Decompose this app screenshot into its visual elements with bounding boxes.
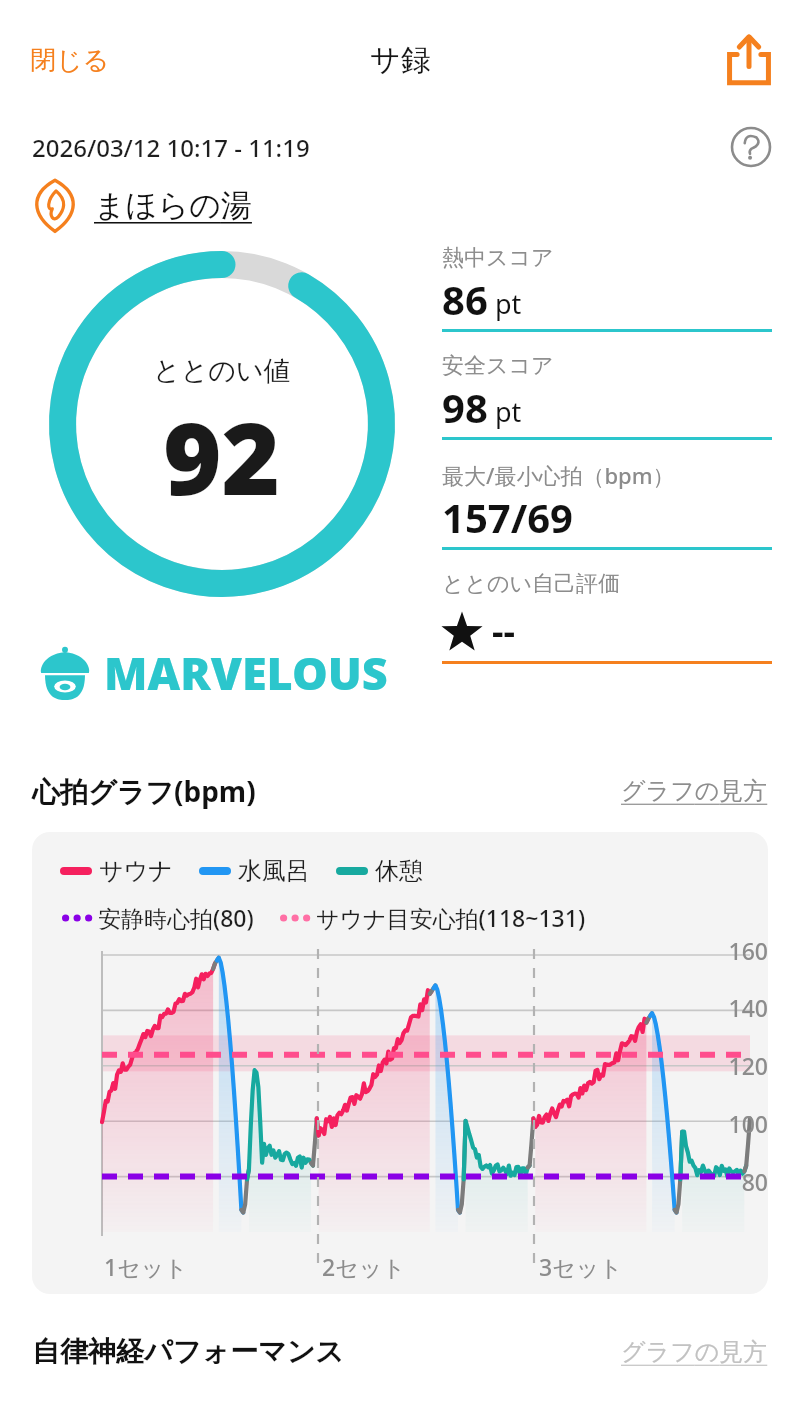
button[interactable]: 閉じる — [16, 34, 124, 87]
staticText: 100 — [728, 1108, 768, 1139]
staticText: 80 — [741, 1166, 768, 1197]
staticText: 自律神経パフォーマンス — [32, 1334, 344, 1369]
staticText: 安全スコア — [442, 352, 554, 380]
button[interactable]: Help — [730, 126, 772, 168]
staticText: pt — [488, 285, 522, 322]
staticText: 160 — [728, 935, 768, 966]
staticText: 140 — [728, 992, 768, 1023]
staticText: 3セット — [539, 1251, 623, 1282]
staticText: サウナ目安心拍(118~131) — [316, 902, 586, 933]
staticText: まほらの湯 — [94, 186, 252, 225]
staticText: 最大/最小心拍（bpm） — [442, 460, 675, 490]
staticText: 1セット — [104, 1251, 188, 1282]
staticText: グラフの見方 — [621, 1337, 768, 1367]
staticText: 安静時心拍(80) — [98, 902, 254, 933]
button[interactable]: まほらの湯 — [28, 174, 252, 236]
staticText: 休憩 — [375, 856, 423, 886]
staticText: MARVELOUS — [104, 642, 388, 703]
staticText: ととのい自己評価 — [442, 570, 621, 598]
staticText: 閉じる — [30, 44, 110, 77]
staticText: 92 — [163, 388, 281, 524]
staticText: 86 — [442, 272, 488, 326]
button[interactable]: グラフの見方 — [621, 776, 768, 806]
button[interactable]: Share — [722, 33, 776, 87]
staticText: 水風呂 — [238, 856, 310, 886]
staticText: 157/69 — [442, 490, 573, 544]
staticText: 心拍グラフ(bpm) — [32, 772, 256, 810]
staticText: pt — [488, 393, 522, 430]
staticText: グラフの見方 — [621, 776, 768, 806]
staticText: 2026/03/12 10:17 - 11:19 — [32, 131, 310, 164]
staticText: サウナ — [99, 856, 173, 886]
staticText: ととのい値 — [153, 354, 291, 388]
staticText: 120 — [728, 1050, 768, 1081]
staticText: 熱中スコア — [442, 244, 554, 272]
staticText: サ録 — [370, 41, 431, 79]
staticText: -- — [492, 606, 516, 655]
staticText: 98 — [442, 380, 488, 434]
staticText: 2セット — [322, 1251, 406, 1282]
